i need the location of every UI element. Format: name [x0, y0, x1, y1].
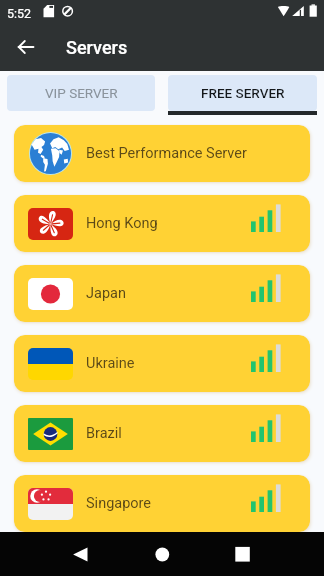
button[interactable]: VIP SERVER [7, 75, 155, 111]
button[interactable]: Back [60, 533, 102, 575]
button[interactable]: Brazil [14, 405, 310, 462]
button[interactable]: Recent apps [221, 533, 263, 575]
staticText: VIP SERVER [45, 85, 118, 101]
staticText: Best Performance Server [86, 145, 247, 162]
staticText: Japan [86, 285, 126, 302]
button[interactable]: Ukraine [14, 335, 310, 392]
staticText: FREE SERVER [201, 85, 285, 101]
button[interactable]: Hong Kong [14, 195, 310, 252]
staticText: Ukraine [86, 355, 135, 372]
staticText: 5:52 [7, 6, 32, 21]
button[interactable]: Back [10, 31, 42, 63]
button[interactable]: Japan [14, 265, 310, 322]
button[interactable]: Singapore [14, 475, 310, 532]
button[interactable]: FREE SERVER [168, 75, 317, 111]
button[interactable]: Home [141, 533, 183, 575]
staticText: Servers [66, 37, 128, 58]
staticText: Hong Kong [86, 215, 158, 232]
staticText: Brazil [86, 425, 122, 442]
button[interactable]: Best Performance Server [14, 125, 310, 182]
staticText: Singapore [86, 495, 152, 512]
